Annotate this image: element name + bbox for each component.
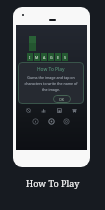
button[interactable]: Settings <box>47 117 56 126</box>
button[interactable]: Info <box>31 117 40 126</box>
staticText: S <box>64 55 66 60</box>
staticText: Guess the image and tap on characters to… <box>23 75 79 92</box>
button[interactable]: OK <box>53 95 71 103</box>
staticText: OK <box>59 97 65 102</box>
button[interactable]: M <box>34 53 40 61</box>
staticText: A <box>43 55 46 60</box>
button[interactable]: Save <box>55 106 64 115</box>
button[interactable]: Store <box>70 106 79 115</box>
button[interactable]: E <box>55 53 61 61</box>
staticText: M <box>35 55 39 60</box>
button[interactable]: I <box>27 53 33 61</box>
button[interactable]: G <box>48 53 54 61</box>
button[interactable]: Mute <box>24 106 33 115</box>
button[interactable]: Stats <box>39 106 48 115</box>
button[interactable]: Refresh <box>62 117 71 126</box>
staticText: E <box>57 55 59 60</box>
staticText: G <box>50 55 53 60</box>
button[interactable]: S <box>62 53 68 61</box>
staticText: I <box>29 55 31 60</box>
button[interactable]: A <box>41 53 47 61</box>
staticText: How To Play <box>37 66 65 73</box>
staticText: How To Play <box>26 177 80 189</box>
